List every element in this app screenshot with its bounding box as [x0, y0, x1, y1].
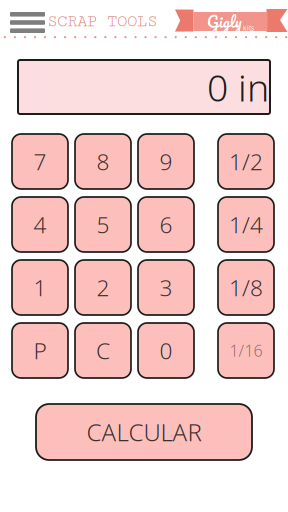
staticText: 5: [96, 209, 109, 239]
button[interactable]: Menu: [10, 12, 45, 33]
button[interactable]: 1/4: [218, 197, 274, 252]
button[interactable]: 3: [138, 260, 194, 315]
button[interactable]: 1/8: [218, 260, 274, 315]
button[interactable]: CALCULAR: [36, 404, 252, 460]
staticText: 2: [96, 272, 109, 302]
staticText: 6: [159, 209, 172, 239]
button[interactable]: 1/16: [218, 323, 274, 378]
button[interactable]: 9: [138, 134, 194, 189]
button[interactable]: C: [75, 323, 131, 378]
staticText: 7: [33, 146, 46, 176]
staticText: 1/8: [229, 272, 263, 302]
button[interactable]: 7: [12, 134, 68, 189]
staticText: 0: [159, 335, 172, 365]
staticText: 1: [33, 272, 46, 302]
staticText: P: [33, 335, 46, 365]
staticText: 0 in: [207, 62, 269, 112]
staticText: CALCULAR: [86, 416, 201, 448]
staticText: 1/16: [229, 340, 262, 361]
button[interactable]: 0: [138, 323, 194, 378]
button[interactable]: 4: [12, 197, 68, 252]
staticText: Gigly: [207, 9, 242, 34]
button[interactable]: 2: [75, 260, 131, 315]
button[interactable]: 1/2: [218, 134, 274, 189]
staticText: SCRAP TOOLS: [47, 12, 157, 31]
staticText: 1/4: [229, 209, 263, 239]
staticText: kits: [243, 23, 254, 32]
staticText: 8: [96, 146, 109, 176]
button[interactable]: 1: [12, 260, 68, 315]
staticText: 1/2: [229, 146, 263, 176]
button[interactable]: 6: [138, 197, 194, 252]
button[interactable]: P: [12, 323, 68, 378]
staticText: 9: [159, 146, 172, 176]
staticText: 4: [33, 209, 46, 239]
button[interactable]: 5: [75, 197, 131, 252]
staticText: 3: [159, 272, 172, 302]
button[interactable]: 8: [75, 134, 131, 189]
staticText: C: [96, 335, 110, 365]
